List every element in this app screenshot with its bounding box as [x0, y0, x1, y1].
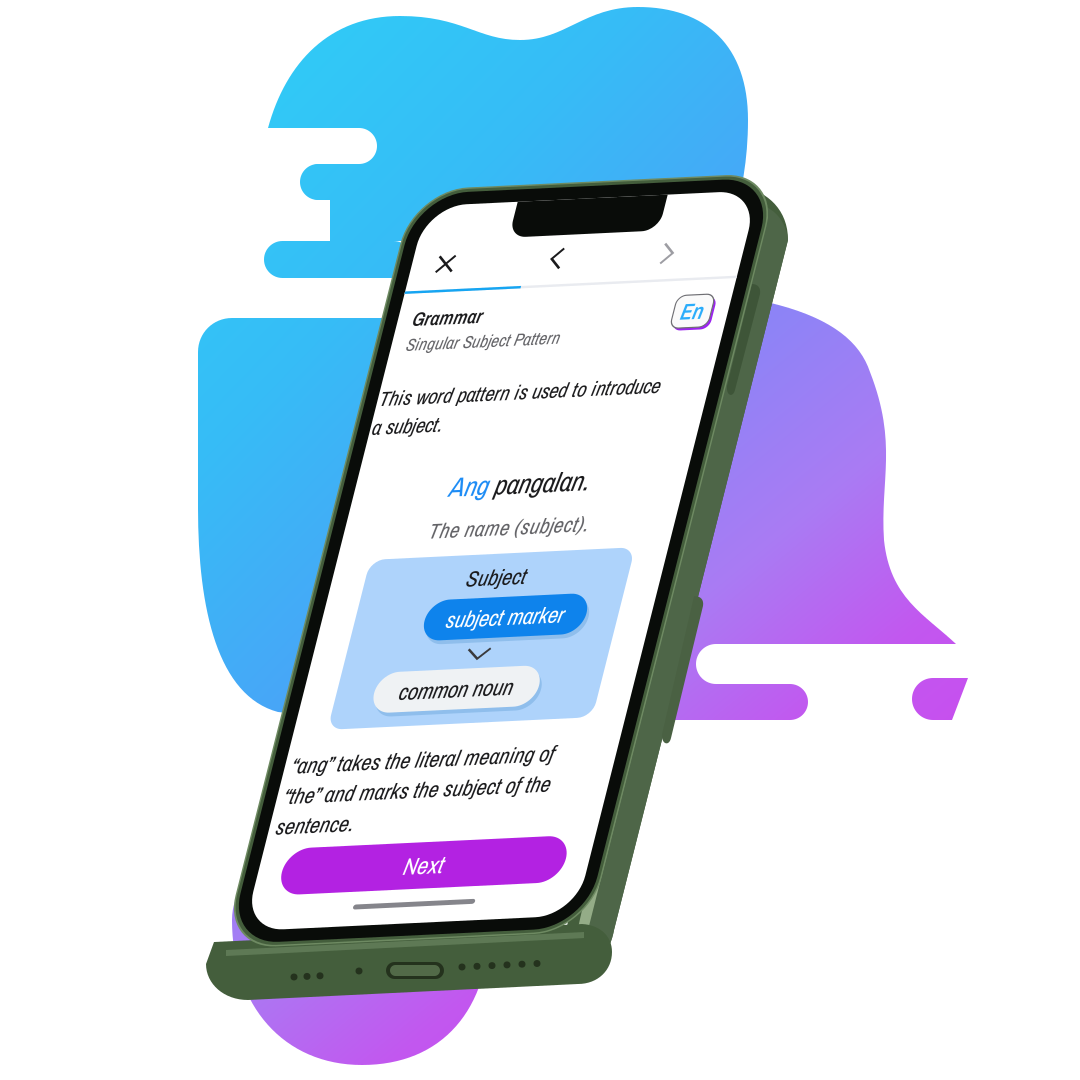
- staticText: Grammar: [446, 308, 516, 334]
- staticText: “the” and marks the subject of the: [438, 785, 705, 815]
- staticText: subject marker: [557, 613, 675, 644]
- button[interactable]: Close: [443, 248, 479, 282]
- staticText: sentence.: [438, 816, 516, 845]
- staticText: Subject: [567, 573, 627, 602]
- staticText: Singular Subject Pattern: [446, 335, 600, 358]
- button[interactable]: Language: English: [706, 308, 748, 345]
- button[interactable]: Back: [554, 248, 590, 282]
- staticText: En: [715, 311, 738, 342]
- staticText: a subject.: [433, 415, 504, 443]
- staticText: “ang” takes the literal meaning of: [438, 754, 701, 784]
- staticText: Next: [577, 861, 617, 893]
- staticText: The name (subject).: [517, 523, 677, 552]
- staticText: pangalan.: [566, 475, 667, 512]
- button[interactable]: Forward: [665, 248, 701, 282]
- button[interactable]: Next: [455, 853, 739, 900]
- staticText: This word pattern is used to introduce: [433, 387, 714, 414]
- staticText: Ang: [527, 475, 566, 512]
- staticText: common noun: [528, 684, 642, 715]
